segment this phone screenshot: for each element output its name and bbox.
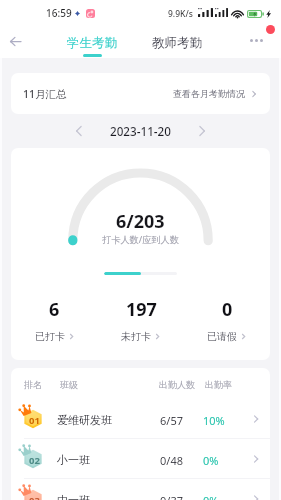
button[interactable]: Next day: [191, 120, 213, 142]
staticText: 0/37: [160, 493, 183, 500]
staticText: 01: [29, 414, 40, 427]
staticText: 出勤率: [205, 379, 232, 390]
staticText: 未打卡: [121, 330, 151, 343]
staticText: 出勤人数: [159, 379, 195, 390]
button[interactable]: 11月汇总: [11, 73, 270, 114]
staticText: 197: [126, 297, 157, 322]
staticText: 6/203: [116, 209, 165, 234]
staticText: 10%: [203, 413, 225, 428]
button[interactable]: 197: [98, 297, 184, 343]
staticText: 班级: [60, 379, 78, 390]
staticText: 0%: [203, 493, 219, 500]
staticText: 学生考勤: [67, 35, 117, 51]
button[interactable]: More options: [241, 25, 271, 55]
staticText: 排名: [24, 379, 42, 390]
staticText: 2023-11-20: [110, 123, 171, 139]
button[interactable]: 教师考勤: [146, 35, 208, 53]
staticText: 02: [29, 454, 40, 467]
staticText: 9.9K/s: [168, 8, 193, 20]
staticText: 已打卡: [35, 330, 65, 343]
button[interactable]: 01: [11, 399, 270, 439]
staticText: 11月汇总: [23, 87, 67, 101]
button[interactable]: Previous day: [68, 120, 90, 142]
staticText: 教师考勤: [152, 35, 202, 51]
staticText: 打卡人数/应到人数: [102, 233, 179, 246]
staticText: 小一班: [57, 453, 90, 467]
staticText: 16:59: [46, 6, 72, 20]
button[interactable]: 6: [11, 297, 98, 343]
button[interactable]: Back: [0, 26, 30, 56]
staticText: 6: [49, 297, 60, 322]
staticText: 中一班: [57, 493, 90, 500]
button[interactable]: 03: [11, 479, 270, 500]
button[interactable]: 0: [184, 297, 270, 343]
staticText: 已请假: [207, 330, 237, 343]
staticText: 0%: [203, 453, 219, 468]
staticText: 查看各月考勤情况: [173, 88, 245, 99]
staticText: 03: [29, 494, 40, 500]
staticText: 0: [222, 297, 233, 322]
staticText: 爱维研发班: [57, 413, 112, 427]
button[interactable]: 02: [11, 439, 270, 479]
button[interactable]: 学生考勤: [61, 29, 123, 58]
staticText: 0/48: [160, 453, 183, 468]
staticText: 6/57: [160, 413, 183, 428]
